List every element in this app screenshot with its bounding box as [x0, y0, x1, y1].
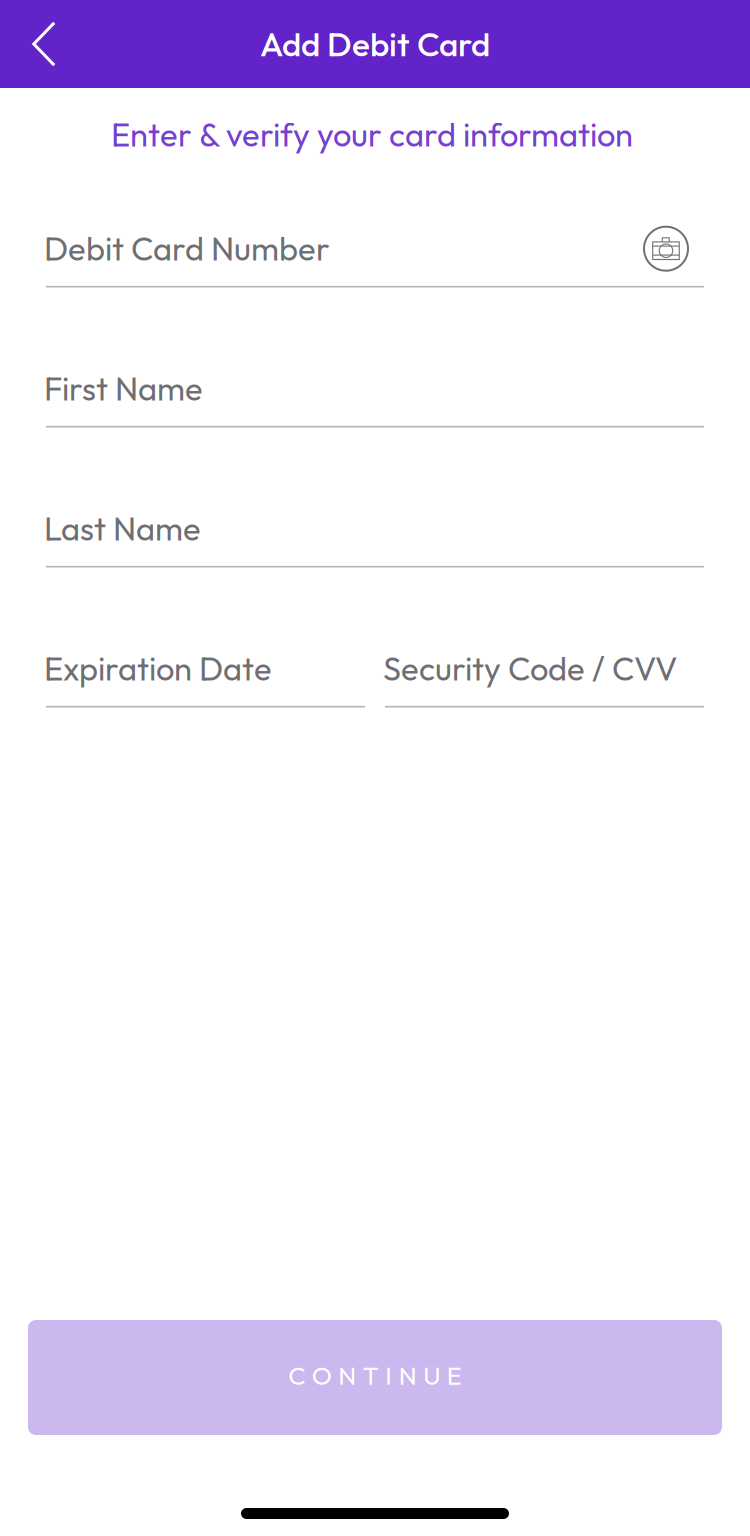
staticText: First Name	[44, 368, 203, 409]
button[interactable]: Debit Card Number	[46, 240, 704, 287]
button[interactable]: CONTINUE	[28, 1320, 722, 1435]
staticText: Expiration Date	[44, 648, 272, 689]
staticText: Enter & verify your card information	[111, 114, 633, 155]
button[interactable]: Back	[0, 0, 88, 88]
staticText: Last Name	[44, 508, 201, 549]
button[interactable]: Expiration Date	[46, 660, 365, 707]
button[interactable]: Security Code / CVV	[385, 660, 704, 707]
staticText: Add Debit Card	[260, 23, 490, 65]
staticText: Security Code / CVV	[383, 648, 677, 689]
button[interactable]: First Name	[46, 380, 704, 427]
button[interactable]: Last Name	[46, 520, 704, 567]
staticText: CONTINUE	[288, 1359, 462, 1391]
staticText: Debit Card Number	[44, 228, 330, 269]
button[interactable]: Scan card with camera	[644, 227, 688, 271]
